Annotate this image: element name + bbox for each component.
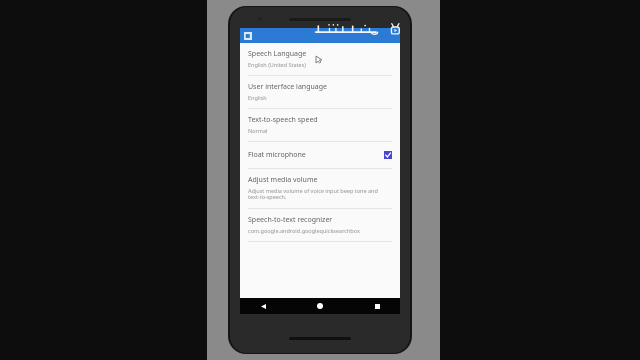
staticText: Adjust media volume — [248, 175, 318, 185]
button[interactable]: Float microphone — [240, 142, 400, 168]
staticText: English (United States) — [248, 61, 306, 68]
button[interactable]: Text-to-speech speed — [240, 109, 400, 141]
button[interactable]: Back — [256, 299, 270, 313]
staticText: Adjust media volume of voice input beep … — [248, 187, 378, 201]
staticText: Normal — [248, 127, 268, 134]
button[interactable]: Adjust media volume — [240, 169, 400, 208]
staticText: Speech Language — [248, 49, 307, 59]
staticText: English — [248, 94, 267, 101]
staticText: Text-to-speech speed — [248, 115, 318, 125]
staticText: com.google.android.googlequicksearchbox — [248, 227, 360, 234]
button[interactable]: Speech Language — [240, 43, 400, 75]
staticText: User interface language — [248, 82, 327, 92]
staticText: Float microphone — [248, 150, 384, 160]
button[interactable]: Speech-to-text recognizer — [240, 209, 400, 241]
button[interactable]: User interface language — [240, 76, 400, 108]
button[interactable]: Home — [313, 299, 327, 313]
button[interactable]: Navigate up — [244, 32, 252, 40]
staticText: Speech-to-text recognizer — [248, 215, 333, 225]
button[interactable]: Recent apps — [370, 299, 384, 313]
